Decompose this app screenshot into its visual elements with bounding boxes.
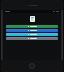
button[interactable] xyxy=(6,33,58,36)
button[interactable]: App logo xyxy=(30,16,35,22)
button[interactable]: Home xyxy=(29,63,35,69)
button[interactable] xyxy=(6,37,58,40)
button[interactable] xyxy=(6,29,58,32)
button[interactable] xyxy=(6,25,58,28)
